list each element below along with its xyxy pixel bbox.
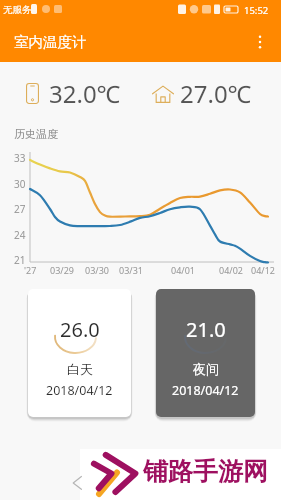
staticText: 24: [14, 228, 26, 242]
staticText: 03/30: [85, 264, 109, 276]
staticText: 03/31: [119, 264, 143, 276]
staticText: 无服务: [3, 4, 32, 16]
staticText: '27: [24, 264, 37, 276]
staticText: 室内温度计: [14, 33, 87, 51]
staticText: 21: [14, 253, 26, 267]
staticText: 21.0: [186, 316, 226, 343]
staticText: 历史温度: [14, 127, 58, 141]
staticText: 15:52: [244, 4, 269, 17]
button[interactable]: 21.0: [156, 289, 255, 417]
staticText: 04/02: [219, 264, 243, 276]
staticText: 27: [14, 202, 26, 216]
staticText: 2018/04/12: [172, 382, 239, 399]
staticText: 铺路手游网: [143, 456, 268, 487]
staticText: 27.0℃: [180, 77, 252, 110]
staticText: 04/01: [171, 264, 195, 276]
button[interactable]: More options: [245, 27, 275, 57]
staticText: 33: [14, 151, 26, 165]
staticText: 2018/04/12: [46, 382, 113, 399]
staticText: 32.0℃: [49, 77, 121, 110]
staticText: 白天: [67, 361, 93, 377]
staticText: 03/29: [50, 264, 74, 276]
staticText: 04/12: [251, 264, 275, 276]
button[interactable]: 26.0: [28, 289, 131, 417]
staticText: 夜间: [193, 361, 219, 377]
staticText: 26.0: [60, 316, 100, 343]
staticText: 30: [14, 177, 26, 191]
